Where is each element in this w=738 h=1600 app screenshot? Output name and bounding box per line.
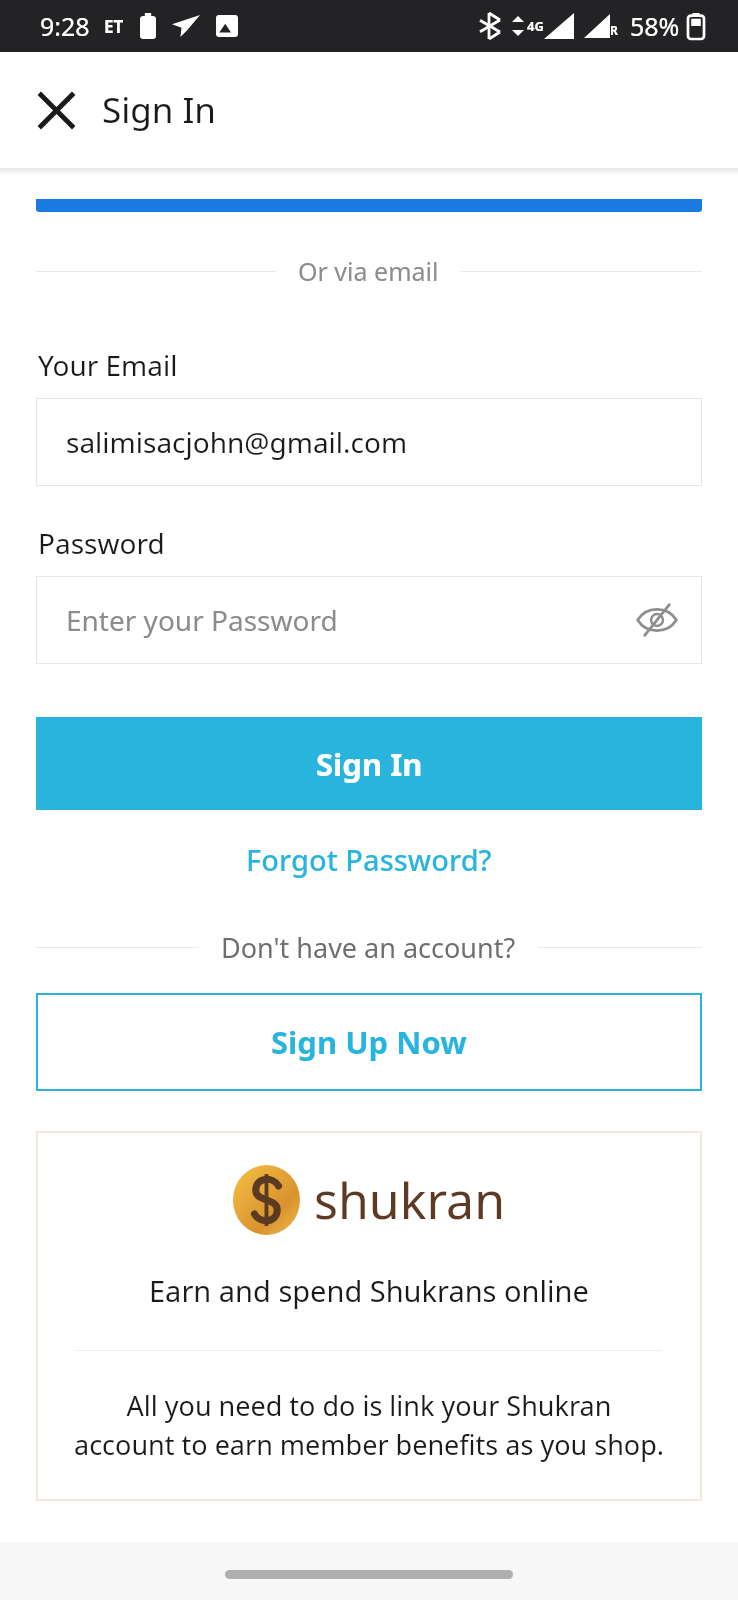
button[interactable]: Enter your Password [36, 576, 702, 664]
staticText: Earn and spend Shukrans online [149, 1271, 589, 1310]
staticText: Or via email [298, 254, 439, 288]
button[interactable]: shukran [36, 1131, 702, 1501]
button[interactable]: salimisacjohn@gmail.com [36, 398, 702, 486]
staticText: ET [104, 15, 124, 38]
staticText: 4G [527, 17, 544, 35]
staticText: Don't have an account? [221, 929, 516, 966]
button[interactable]: Sign In [36, 717, 702, 810]
staticText: Sign In [316, 743, 423, 785]
button[interactable]: Forgot Password? [226, 828, 512, 891]
staticText: Sign In [102, 86, 216, 134]
staticText: All you need to do is link your Shukran … [74, 1387, 664, 1463]
staticText: salimisacjohn@gmail.com [66, 423, 408, 461]
staticText: Password [38, 524, 165, 562]
staticText: shukran [314, 1166, 506, 1234]
staticText: R [610, 22, 618, 38]
staticText: Forgot Password? [246, 840, 492, 879]
staticText: 58% [630, 9, 680, 43]
button[interactable]: Show password [626, 589, 688, 651]
staticText: Sign Up Now [271, 1021, 467, 1063]
button[interactable]: Close [20, 74, 92, 146]
button[interactable]: Sign Up Now [36, 993, 702, 1091]
staticText: Enter your Password [66, 601, 338, 639]
staticText: 9:28 [40, 9, 90, 43]
button[interactable]: Continue with Facebook [36, 199, 702, 212]
staticText: Your Email [38, 346, 178, 384]
